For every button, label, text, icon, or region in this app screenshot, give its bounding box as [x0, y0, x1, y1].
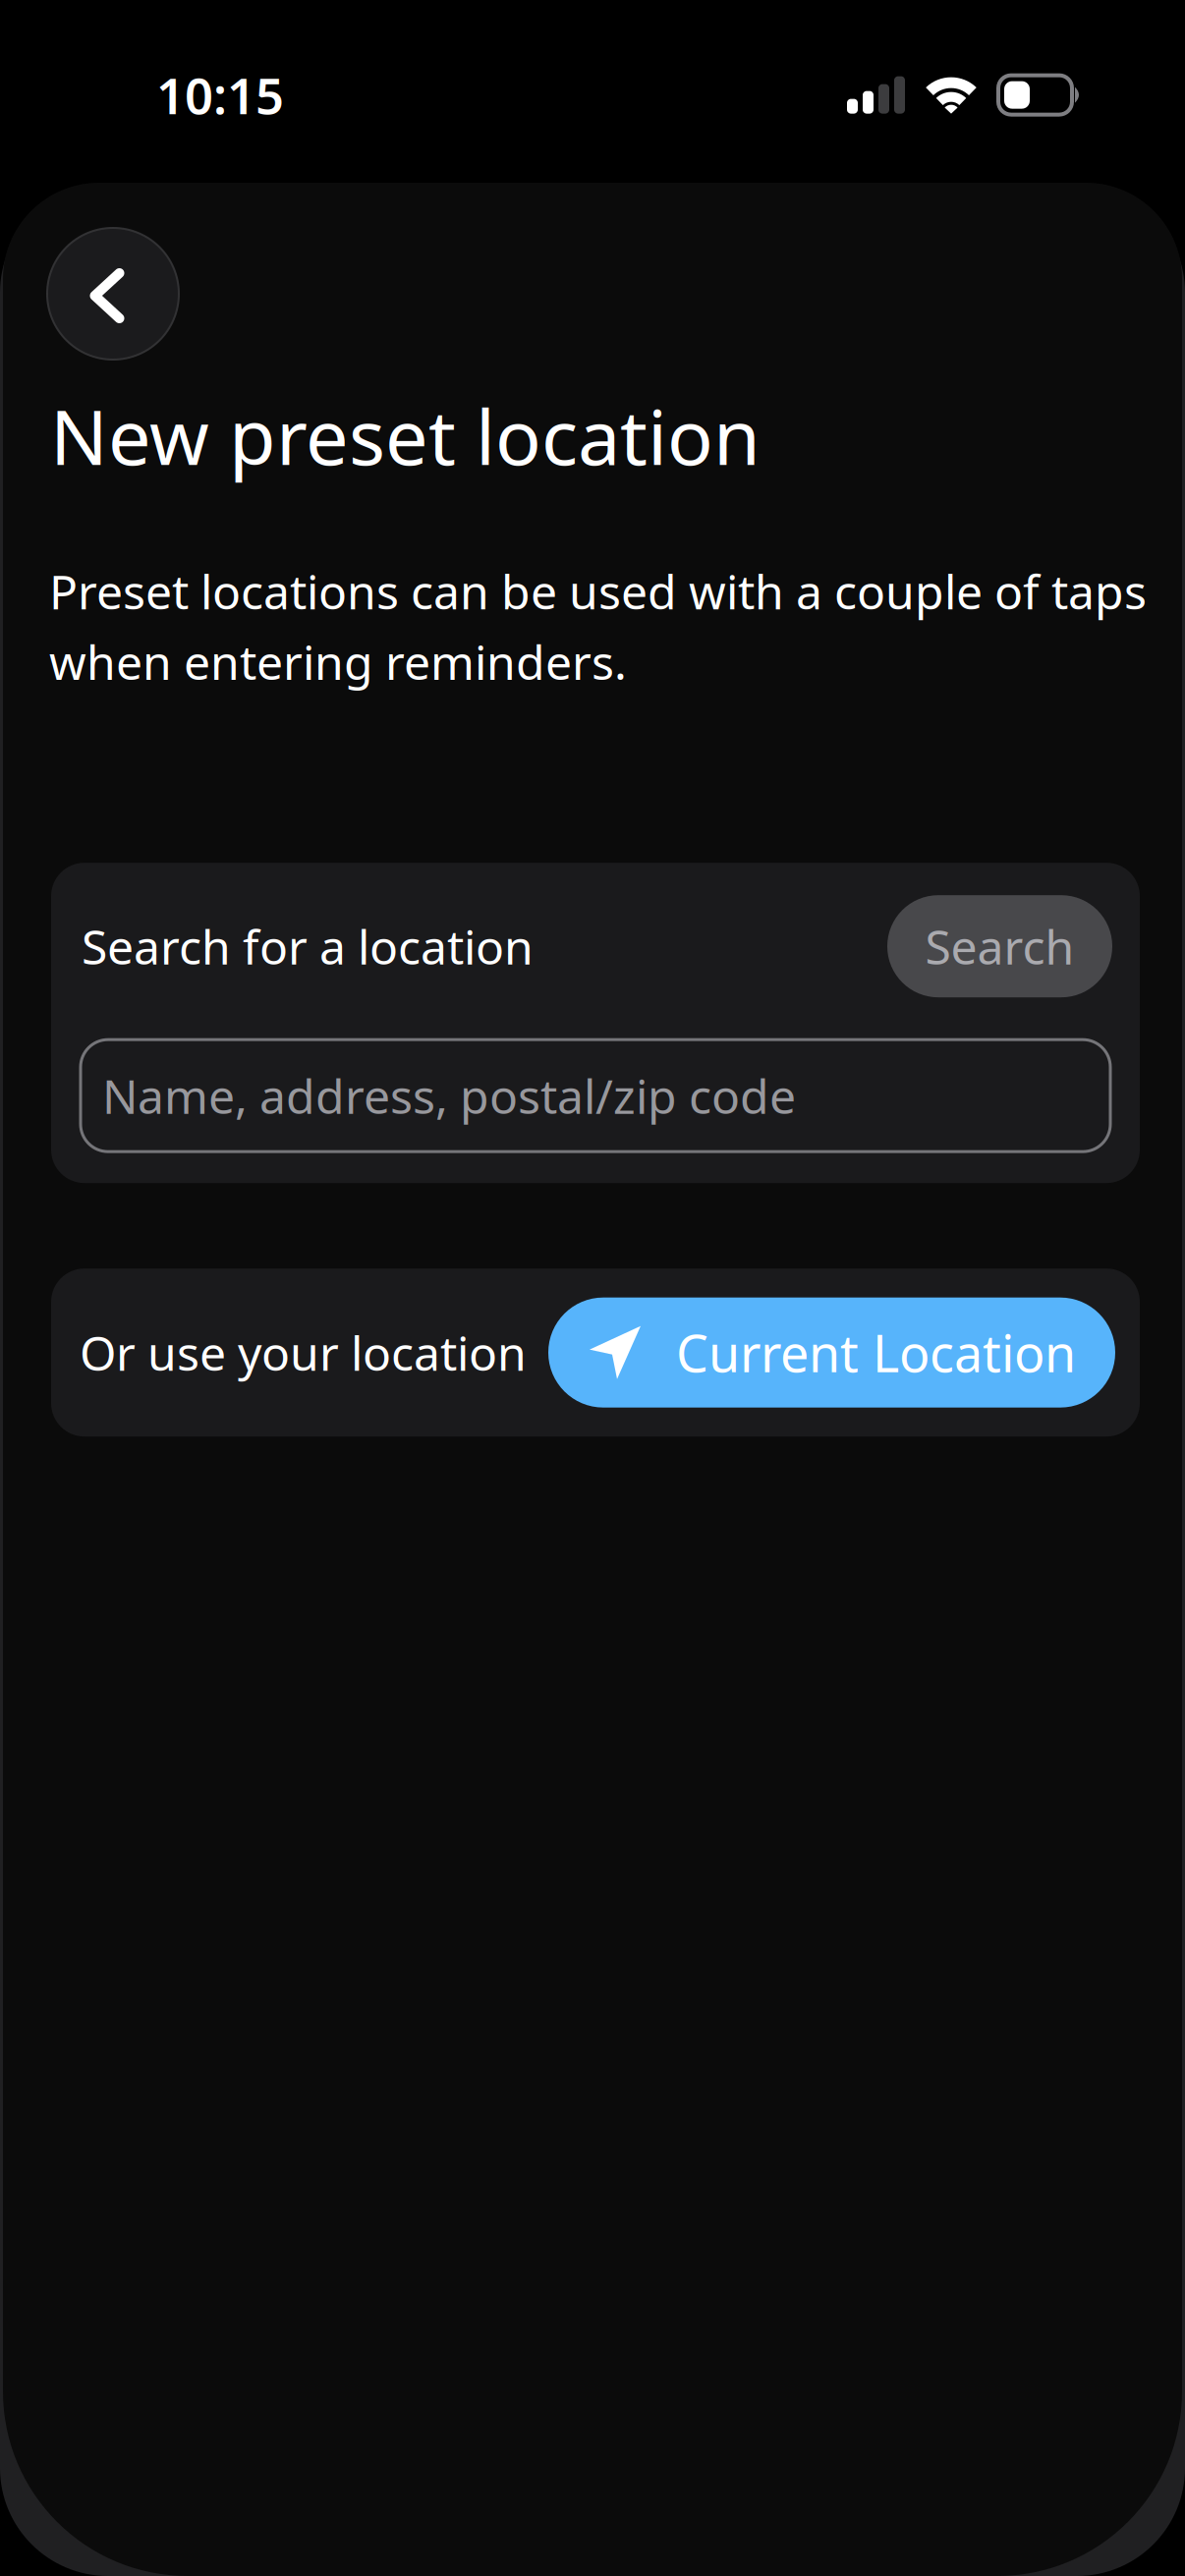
staticText: Current Location	[676, 1319, 1076, 1387]
staticText: 10:15	[156, 62, 284, 128]
staticText: Or use your location	[80, 1321, 527, 1384]
button[interactable]: Back	[47, 228, 179, 360]
button[interactable]: Search	[887, 895, 1112, 997]
button[interactable]: Current Location	[548, 1298, 1115, 1408]
staticText: New preset location	[50, 385, 761, 486]
staticText: Search	[925, 915, 1074, 978]
staticText: Name, address, postal/zip code	[102, 1064, 796, 1127]
staticText: Search for a location	[82, 915, 534, 978]
staticText: Preset locations can be used with a coup…	[49, 560, 1147, 693]
